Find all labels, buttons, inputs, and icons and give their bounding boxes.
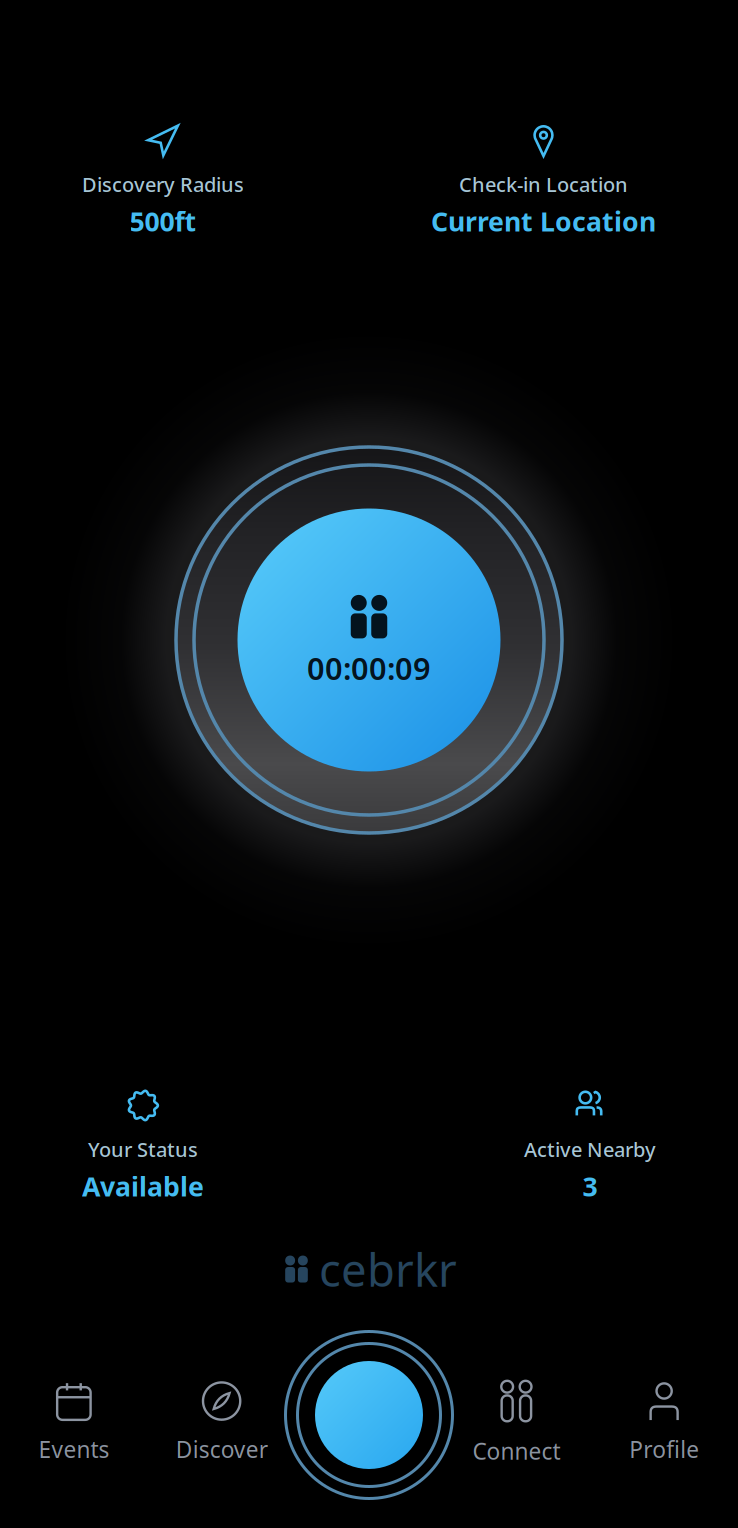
button[interactable]: Active Nearby <box>524 1089 656 1204</box>
staticText: Your Status <box>88 1136 198 1163</box>
button[interactable]: Discovery Radius <box>82 124 244 239</box>
staticText: 00:00:09 <box>307 648 431 688</box>
staticText: Profile <box>629 1434 699 1464</box>
button[interactable]: Profile <box>590 1382 738 1464</box>
staticText: Current Location <box>431 204 656 239</box>
staticText: Events <box>38 1434 109 1464</box>
staticText: 3 <box>582 1168 597 1204</box>
staticText: 500ft <box>129 204 196 239</box>
staticText: Connect <box>472 1436 560 1466</box>
staticText: cebrkr <box>319 1239 457 1299</box>
button[interactable]: Events <box>0 1382 148 1464</box>
staticText: Discovery Radius <box>82 171 244 198</box>
staticText: Available <box>82 1168 204 1204</box>
staticText: Active Nearby <box>524 1136 656 1163</box>
staticText: Discover <box>176 1434 268 1464</box>
button[interactable]: Check-in Location <box>431 124 656 239</box>
button[interactable]: Connect <box>442 1380 590 1466</box>
button[interactable]: Break the ice <box>315 1361 423 1469</box>
staticText: Check-in Location <box>459 171 628 198</box>
button[interactable]: Your Status <box>82 1089 204 1204</box>
button[interactable]: Break the ice timer <box>237 508 500 771</box>
button[interactable]: Discover <box>148 1382 296 1464</box>
